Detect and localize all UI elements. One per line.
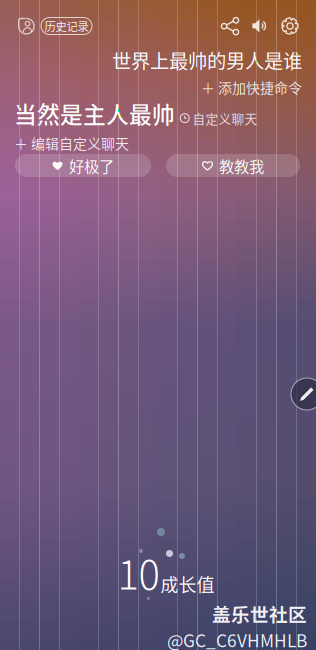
staticText: 自定义聊天 [192,109,257,127]
staticText: 当然是主人最帅 [14,97,175,130]
staticText: 盖乐世社区 [212,600,307,627]
staticText: 历史记录 [44,18,88,34]
button[interactable]: 好极了 [15,154,151,177]
staticText: ＋ 添加快捷命令 [201,77,302,97]
button[interactable]: ＋ 编辑自定义聊天 [14,133,129,153]
staticText: 10 [117,543,159,601]
staticText: 世界上最帅的男人是谁 [112,46,302,74]
button[interactable]: 历史记录 [41,17,92,34]
button[interactable]: Edit [291,378,316,410]
button[interactable]: Sound [245,11,275,41]
staticText: 教教我 [219,154,264,177]
staticText: 好极了 [69,154,114,177]
staticText: @GC_C6VHMHLB [167,627,307,650]
staticText: ＋ 编辑自定义聊天 [14,133,129,153]
button[interactable]: ＋ 添加快捷命令 [201,77,302,97]
button[interactable]: Share [215,11,245,41]
button[interactable]: Settings [275,11,305,41]
button[interactable]: 教教我 [166,154,300,177]
staticText: 成长值 [160,571,214,597]
button[interactable]: My profile [11,10,41,42]
